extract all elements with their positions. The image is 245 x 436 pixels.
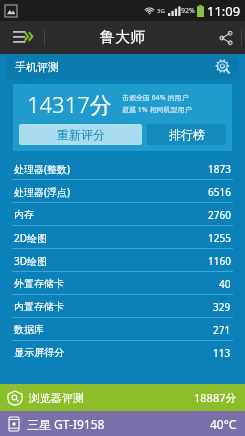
- button[interactable]: Share: [211, 23, 241, 53]
- staticText: 18887分: [194, 390, 237, 405]
- button[interactable]: 数据库: [0, 318, 245, 341]
- staticText: 重新评分: [57, 127, 105, 142]
- button[interactable]: 手机评测: [6, 54, 239, 79]
- staticText: 40°C: [210, 416, 237, 432]
- staticText: 3G: [157, 7, 165, 15]
- button[interactable]: 3D绘图: [0, 249, 245, 272]
- staticText: 鲁大师: [100, 28, 145, 47]
- staticText: 113: [213, 346, 231, 360]
- staticText: 处理器(浮点): [14, 185, 70, 199]
- staticText: 外置存储卡: [14, 277, 64, 290]
- button[interactable]: 重新评分: [19, 124, 142, 145]
- button[interactable]: 浏览器评测: [0, 384, 245, 411]
- button[interactable]: Detect: [211, 55, 235, 79]
- staticText: 1255: [208, 231, 231, 245]
- button[interactable]: 内置存储卡: [0, 295, 245, 318]
- staticText: 1160: [208, 254, 231, 268]
- staticText: 271: [213, 323, 231, 337]
- staticText: 11:09: [207, 2, 241, 20]
- staticText: 手机评测: [15, 60, 59, 74]
- staticText: 2760: [208, 208, 231, 222]
- button[interactable]: 2D绘图: [0, 226, 245, 249]
- staticText: 329: [213, 300, 231, 314]
- staticText: 2D绘图: [14, 231, 48, 245]
- staticText: 排行榜: [169, 127, 205, 142]
- staticText: 6516: [208, 185, 231, 199]
- staticText: 14317分: [27, 89, 112, 119]
- button[interactable]: 外置存储卡: [0, 272, 245, 295]
- button[interactable]: 内存: [0, 203, 245, 226]
- staticText: 浏览器评测: [29, 391, 84, 405]
- button[interactable]: 处理器(整数): [0, 157, 245, 180]
- staticText: 92%: [181, 6, 195, 16]
- button[interactable]: 三星 GT-I9158: [0, 411, 245, 436]
- staticText: 显示屏得分: [14, 346, 64, 359]
- staticText: 超越 1% 相同机型用户: [122, 105, 192, 115]
- staticText: 三星 GT-I9158: [27, 416, 105, 432]
- staticText: 数据库: [14, 323, 44, 336]
- staticText: 1873: [208, 162, 231, 176]
- button[interactable]: 显示屏得分: [0, 341, 245, 364]
- button[interactable]: 处理器(浮点): [0, 180, 245, 203]
- staticText: 内存: [14, 208, 34, 221]
- button[interactable]: Menu: [6, 21, 40, 54]
- staticText: 处理器(整数): [14, 162, 70, 176]
- staticText: 击败全国 64% 的用户: [122, 93, 189, 103]
- button[interactable]: 排行榜: [147, 124, 226, 145]
- staticText: 40: [219, 277, 231, 291]
- staticText: 内置存储卡: [14, 300, 64, 313]
- staticText: 3D绘图: [14, 254, 48, 268]
